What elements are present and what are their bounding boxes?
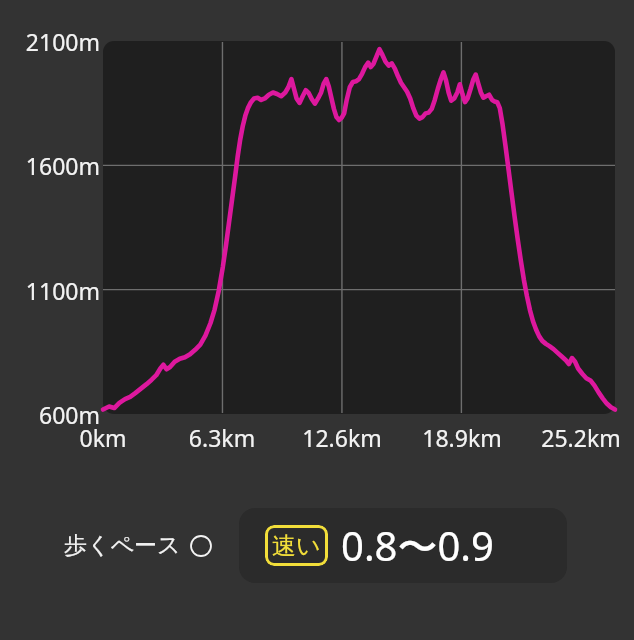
staticText: 600m	[0, 399, 100, 430]
staticText: 速い	[272, 531, 321, 561]
other: ヘルプ	[190, 535, 212, 557]
staticText: 25.2km	[521, 422, 634, 453]
staticText: 0km	[43, 422, 163, 453]
staticText: 0.8〜0.9	[341, 518, 494, 573]
staticText: 歩くペース	[64, 531, 181, 560]
staticText: 2100m	[0, 26, 100, 57]
staticText: 1100m	[0, 275, 100, 306]
button[interactable]: 歩くペース	[62, 527, 214, 564]
staticText: 6.3km	[162, 422, 282, 453]
staticText: 1600m	[0, 150, 100, 181]
button[interactable]: 速い	[239, 508, 567, 583]
staticText: 12.6km	[282, 422, 402, 453]
staticText: 18.9km	[402, 422, 522, 453]
